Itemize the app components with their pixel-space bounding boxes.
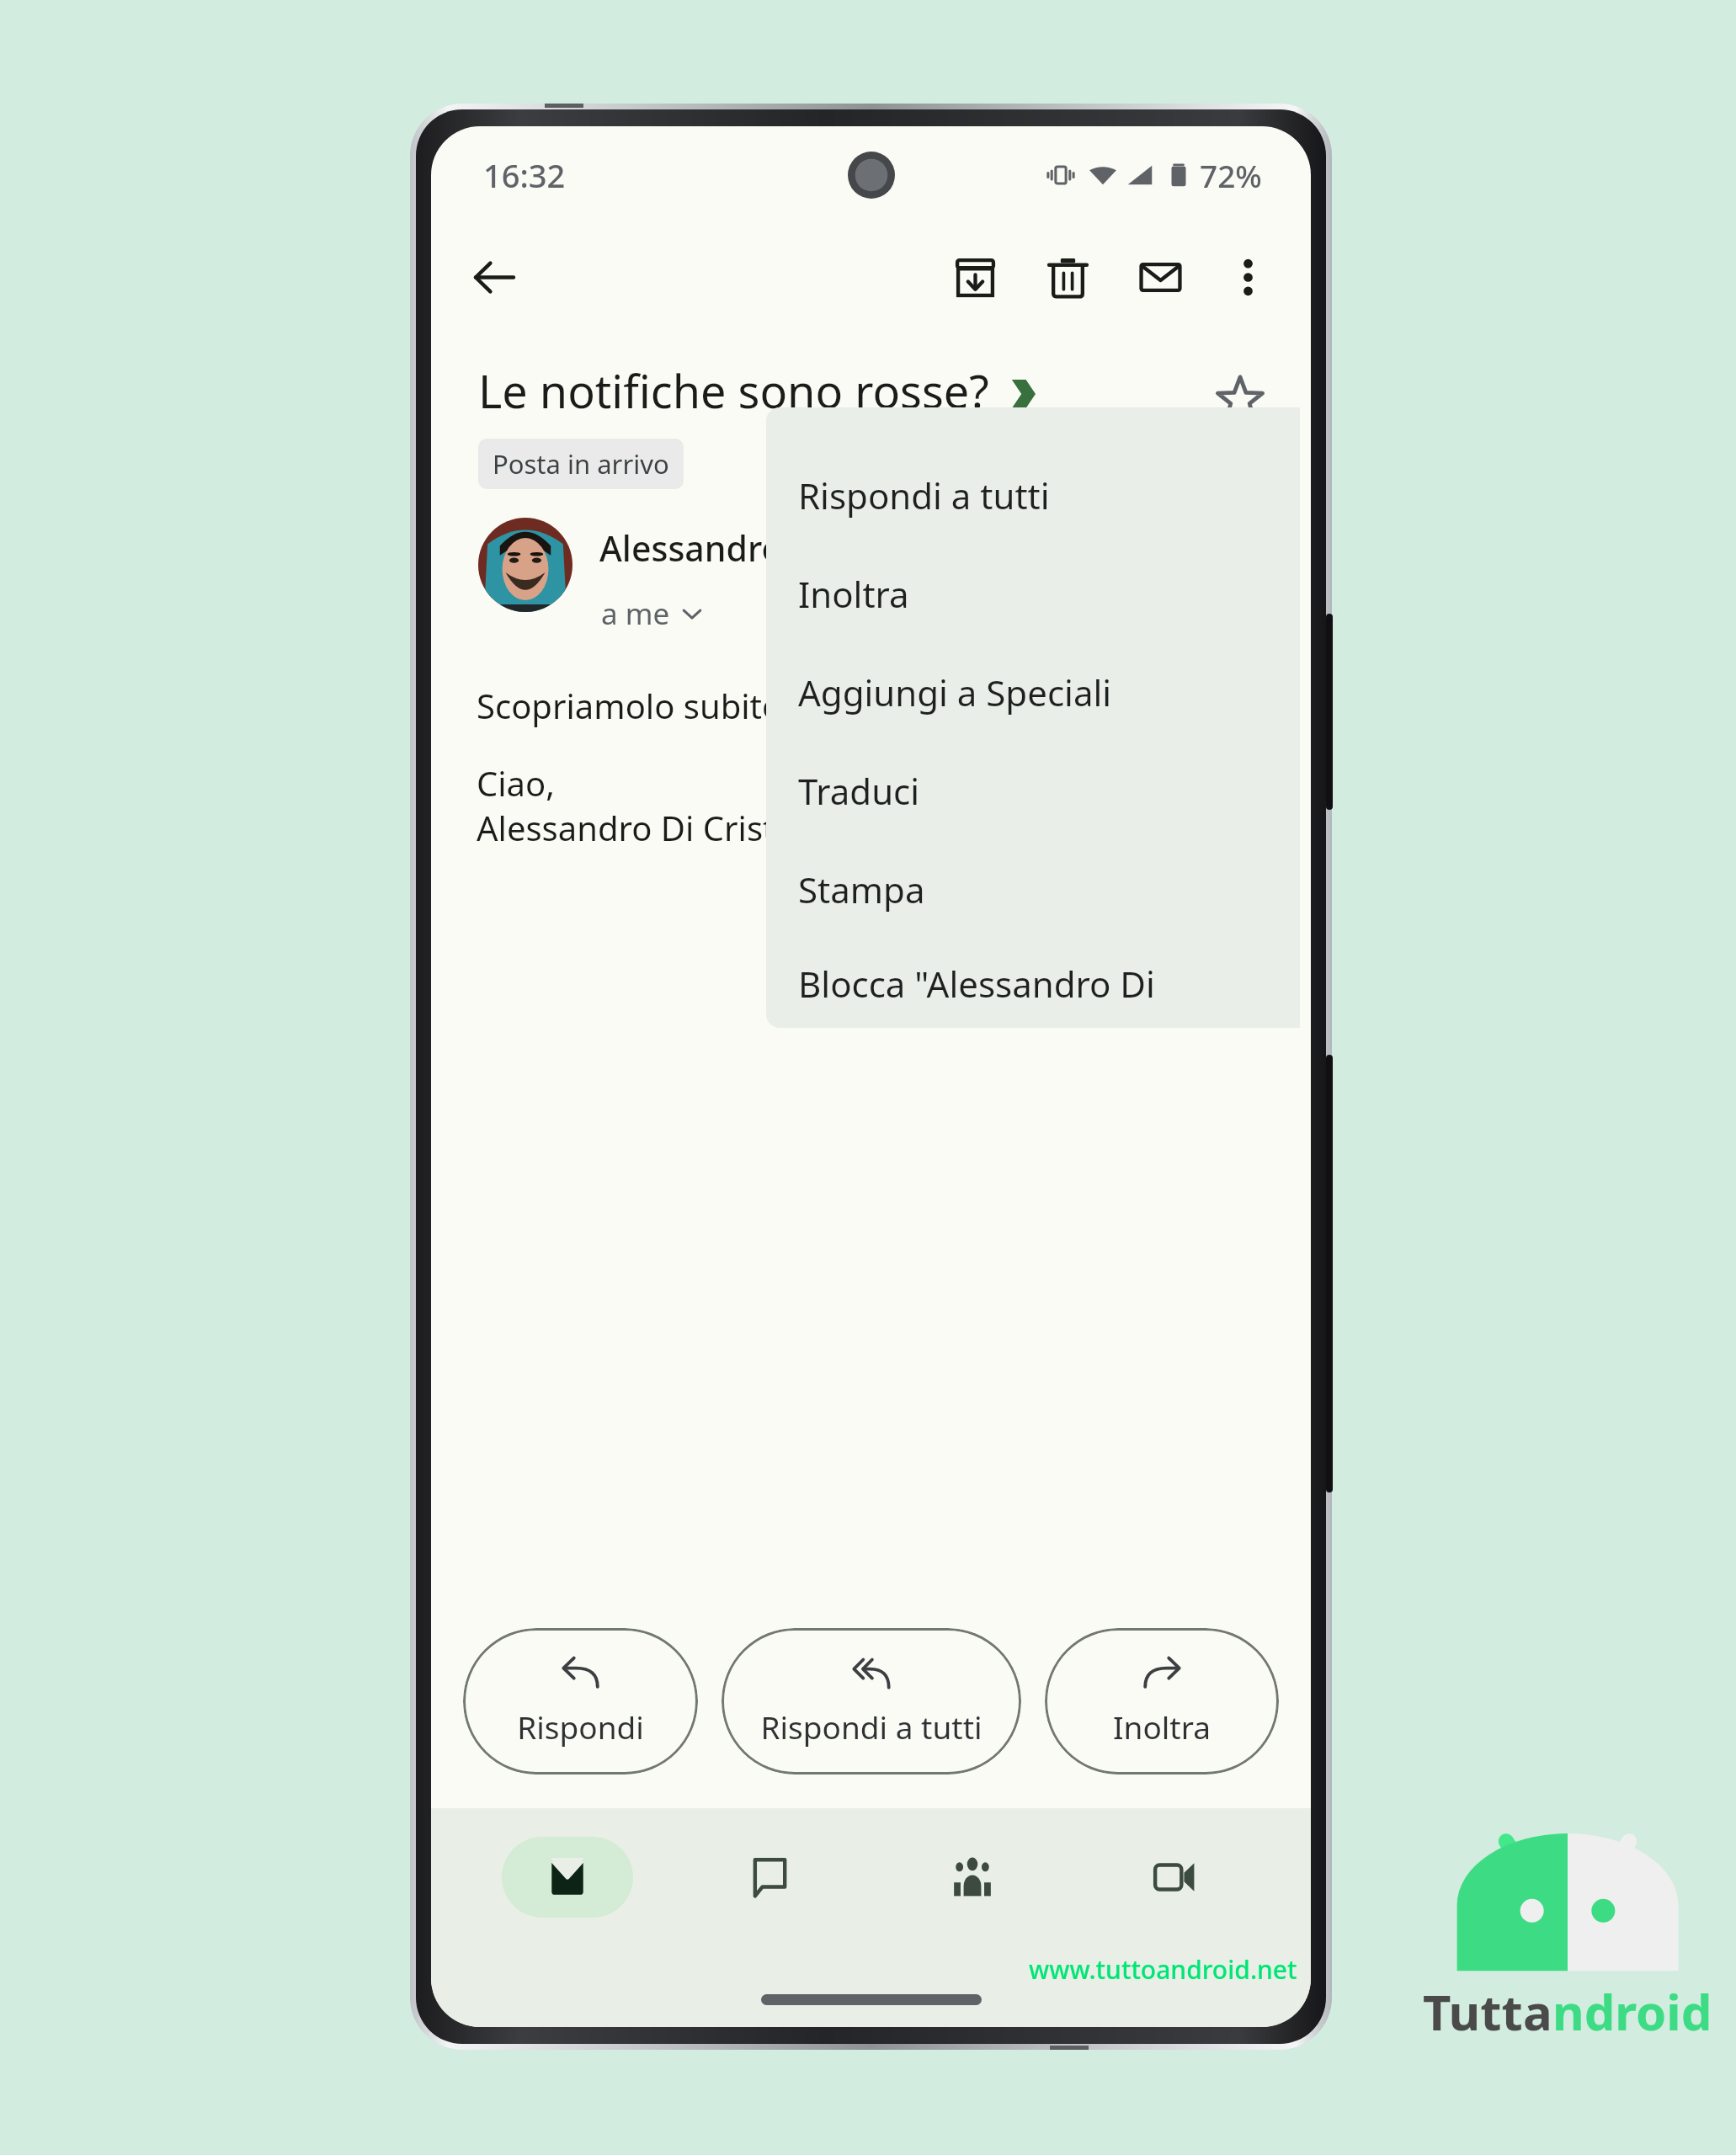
button[interactable]: Posta in arrivo — [478, 439, 684, 489]
staticText: Alessandro Di Cristina — [599, 524, 962, 572]
staticText: Posta in arrivo — [493, 446, 669, 482]
staticText: Stampa — [798, 865, 925, 913]
staticText: Rispondi — [517, 1705, 644, 1748]
staticText: Ciao, Alessandro Di Cristina — [477, 760, 823, 851]
staticText: Inoltra — [798, 570, 909, 618]
button[interactable]: More options — [1213, 242, 1282, 311]
staticText: www.tuttoandroid.net — [1029, 1952, 1297, 1987]
button[interactable]: Back — [460, 242, 529, 311]
button[interactable]: Archive — [940, 242, 1009, 311]
button[interactable]: Inoltra — [1045, 1628, 1279, 1775]
button[interactable]: Rispondi a tutti — [766, 446, 1300, 545]
button[interactable]: Blocca "Alessandro Di Cristina" — [766, 939, 1300, 1028]
button[interactable]: Stampa — [766, 840, 1300, 939]
staticText: a — [1523, 1978, 1552, 2045]
button[interactable]: Meet — [1109, 1837, 1240, 1918]
button[interactable]: a me — [599, 592, 706, 636]
staticText: a me — [601, 593, 670, 634]
staticText: Rispondi a tutti — [760, 1705, 982, 1748]
button[interactable]: Aggiungi a Speciali — [766, 643, 1300, 742]
button[interactable]: Rispondi a tutti — [722, 1628, 1021, 1775]
staticText: Le notifiche sono rosse? — [478, 359, 989, 422]
staticText: Scopriamolo subito. — [477, 683, 791, 728]
button[interactable]: Spaces — [907, 1837, 1038, 1918]
button[interactable]: Traduci — [766, 742, 1300, 840]
staticText: Tutt — [1423, 1978, 1523, 2045]
staticText: Blocca "Alessandro Di Cristina" — [798, 960, 1300, 1008]
staticText: 72% — [1200, 154, 1262, 196]
staticText: Rispondi a tutti — [798, 471, 1050, 519]
staticText: ndroid — [1552, 1978, 1712, 2045]
button[interactable]: Mark unread — [1126, 242, 1195, 311]
staticText: Aggiungi a Speciali — [798, 668, 1112, 716]
button[interactable]: Star — [1200, 359, 1281, 440]
button[interactable]: Inoltra — [766, 545, 1300, 643]
button[interactable]: Mail — [502, 1837, 633, 1918]
button[interactable]: Delete — [1033, 242, 1102, 311]
staticText: 16:32 — [483, 153, 566, 197]
staticText: Traduci — [798, 767, 920, 815]
staticText: Inoltra — [1113, 1705, 1211, 1748]
button[interactable]: Rispondi — [463, 1628, 698, 1775]
button[interactable]: Chat — [704, 1837, 835, 1918]
